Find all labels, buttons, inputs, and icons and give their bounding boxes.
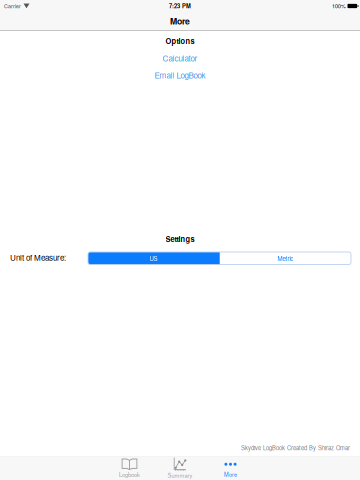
button[interactable]: Logbook [104, 456, 154, 480]
staticText: Logbook [119, 470, 140, 478]
button[interactable]: Email LogBook [0, 69, 360, 81]
staticText: 7:23 PM [169, 2, 191, 10]
staticText: More [170, 15, 190, 27]
staticText: Summary [167, 471, 192, 479]
button[interactable]: US [88, 252, 219, 264]
staticText: Settings [165, 234, 194, 244]
staticText: More [224, 470, 237, 478]
staticText: Options [165, 36, 194, 46]
button[interactable]: Calculator [0, 52, 360, 64]
staticText: Skydive LogBook Created By Shiraz Omar [241, 444, 350, 452]
staticText: Email LogBook [154, 69, 205, 81]
staticText: Calculator [162, 52, 197, 64]
staticText: Carrier [4, 2, 21, 10]
staticText: US [150, 254, 158, 263]
staticText: 100% [332, 2, 346, 10]
staticText: Unit of Measure: [10, 251, 66, 263]
button[interactable]: Summary [155, 456, 205, 480]
staticText: Metric [277, 254, 293, 263]
button[interactable]: More [205, 456, 255, 480]
button[interactable]: Metric [220, 252, 351, 264]
